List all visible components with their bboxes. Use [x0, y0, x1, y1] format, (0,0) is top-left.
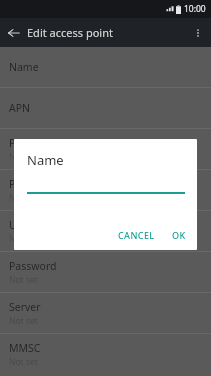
staticText: Name — [27, 151, 64, 169]
staticText: Not set — [9, 274, 38, 286]
staticText: OK — [172, 229, 186, 241]
button[interactable]: Password — [0, 252, 211, 292]
button[interactable]: CANCEL — [112, 225, 161, 245]
staticText: Port — [9, 177, 30, 191]
staticText: Not set — [9, 356, 38, 368]
staticText: 10:00 — [184, 3, 206, 15]
staticText: Password — [9, 259, 57, 273]
staticText: APN — [9, 101, 31, 115]
staticText: Username — [9, 218, 61, 232]
button[interactable]: Username — [0, 211, 211, 251]
button[interactable]: APN — [0, 88, 211, 128]
staticText: Not set — [9, 192, 38, 204]
button[interactable]: OK — [166, 225, 192, 245]
button[interactable]: Name — [0, 47, 211, 87]
button[interactable]: Server — [0, 293, 211, 333]
staticText: Proxy — [9, 136, 37, 150]
staticText: Edit access point — [27, 25, 113, 40]
button[interactable]: Proxy — [0, 129, 211, 169]
button[interactable]: More options — [187, 22, 208, 43]
staticText: Not set — [9, 315, 38, 327]
staticText: Not set — [9, 151, 38, 163]
button[interactable]: MMSC — [0, 334, 211, 374]
staticText: Server — [9, 300, 41, 314]
staticText: Not set — [9, 233, 38, 245]
staticText: Name — [9, 60, 39, 74]
staticText: CANCEL — [118, 229, 155, 241]
button[interactable]: Port — [0, 170, 211, 210]
staticText: MMSC — [9, 341, 41, 355]
button[interactable]: Navigate up — [3, 22, 24, 43]
